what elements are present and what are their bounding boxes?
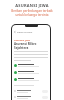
staticText: Detail Produk bbox=[17, 30, 33, 33]
button[interactable]: Back bbox=[12, 30, 50, 33]
button[interactable]: Pilih bbox=[14, 94, 48, 100]
staticText: Asuransi Mikro Sejahtera bbox=[14, 42, 48, 50]
staticText: Asuransi Jiwa bbox=[14, 38, 30, 41]
staticText: ASURANSI JIWA bbox=[15, 3, 49, 8]
staticText: Berikan perlindungan terbaik untuk kelua… bbox=[11, 9, 53, 17]
button[interactable] bbox=[14, 76, 48, 83]
button[interactable]: Pilih bbox=[14, 88, 48, 94]
button[interactable] bbox=[14, 69, 48, 76]
button[interactable] bbox=[14, 62, 48, 69]
other: Back bbox=[14, 31, 16, 33]
